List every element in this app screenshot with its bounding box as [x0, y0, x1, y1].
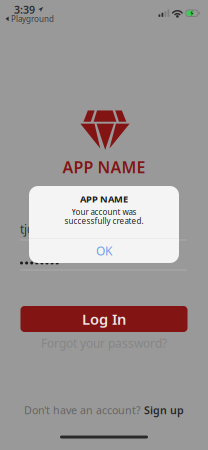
staticText: successfully created.: [64, 216, 143, 226]
staticText: Your account was: [71, 207, 136, 217]
staticText: Log In: [82, 309, 126, 329]
staticText: Don't have an account?: [24, 403, 141, 417]
button[interactable]: Forgot your password?: [41, 335, 167, 351]
staticText: Forgot your password?: [41, 335, 167, 351]
staticText: tj@example.com: [20, 221, 113, 237]
button[interactable]: Log In: [20, 306, 187, 332]
staticText: Sign up: [144, 403, 184, 417]
staticText: OK: [96, 243, 112, 259]
staticText: APP NAME: [62, 156, 145, 178]
staticText: Playground: [11, 13, 54, 24]
staticText: APP NAME: [80, 193, 128, 205]
staticText: 3:39: [14, 2, 35, 17]
button[interactable]: OK: [29, 239, 179, 263]
button[interactable]: Sign up: [144, 403, 184, 417]
